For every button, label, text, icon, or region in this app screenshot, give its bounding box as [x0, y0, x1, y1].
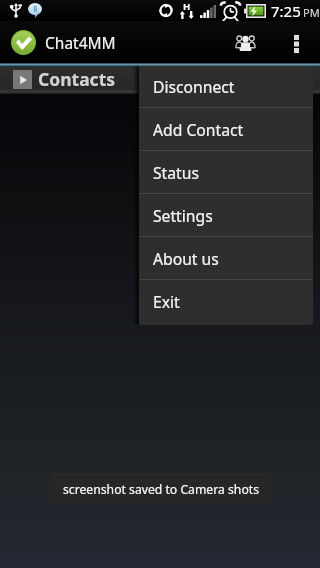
button[interactable]: Add Contact — [139, 108, 313, 150]
staticText: 7:25 — [271, 1, 301, 21]
button[interactable]: Status — [139, 151, 313, 193]
button[interactable]: Contacts — [13, 67, 116, 91]
staticText: Disconnect — [153, 76, 235, 97]
button[interactable]: Disconnect — [139, 66, 313, 107]
button[interactable]: Chat4MM — [11, 30, 116, 55]
staticText: screenshot saved to Camera shots — [63, 481, 259, 498]
staticText: Settings — [153, 205, 213, 226]
staticText: H — [183, 0, 191, 13]
staticText: PM — [303, 5, 320, 20]
staticText: About us — [153, 248, 219, 269]
button[interactable]: More options — [282, 23, 310, 65]
button[interactable]: About us — [139, 237, 313, 279]
staticText: Contacts — [38, 67, 116, 91]
button[interactable]: Exit — [139, 280, 313, 325]
button[interactable]: Group contacts — [225, 21, 266, 63]
staticText: Exit — [153, 291, 180, 312]
staticText: Chat4MM — [45, 32, 116, 53]
staticText: Add Contact — [153, 119, 244, 140]
staticText: Status — [153, 162, 199, 183]
button[interactable]: Settings — [139, 194, 313, 236]
